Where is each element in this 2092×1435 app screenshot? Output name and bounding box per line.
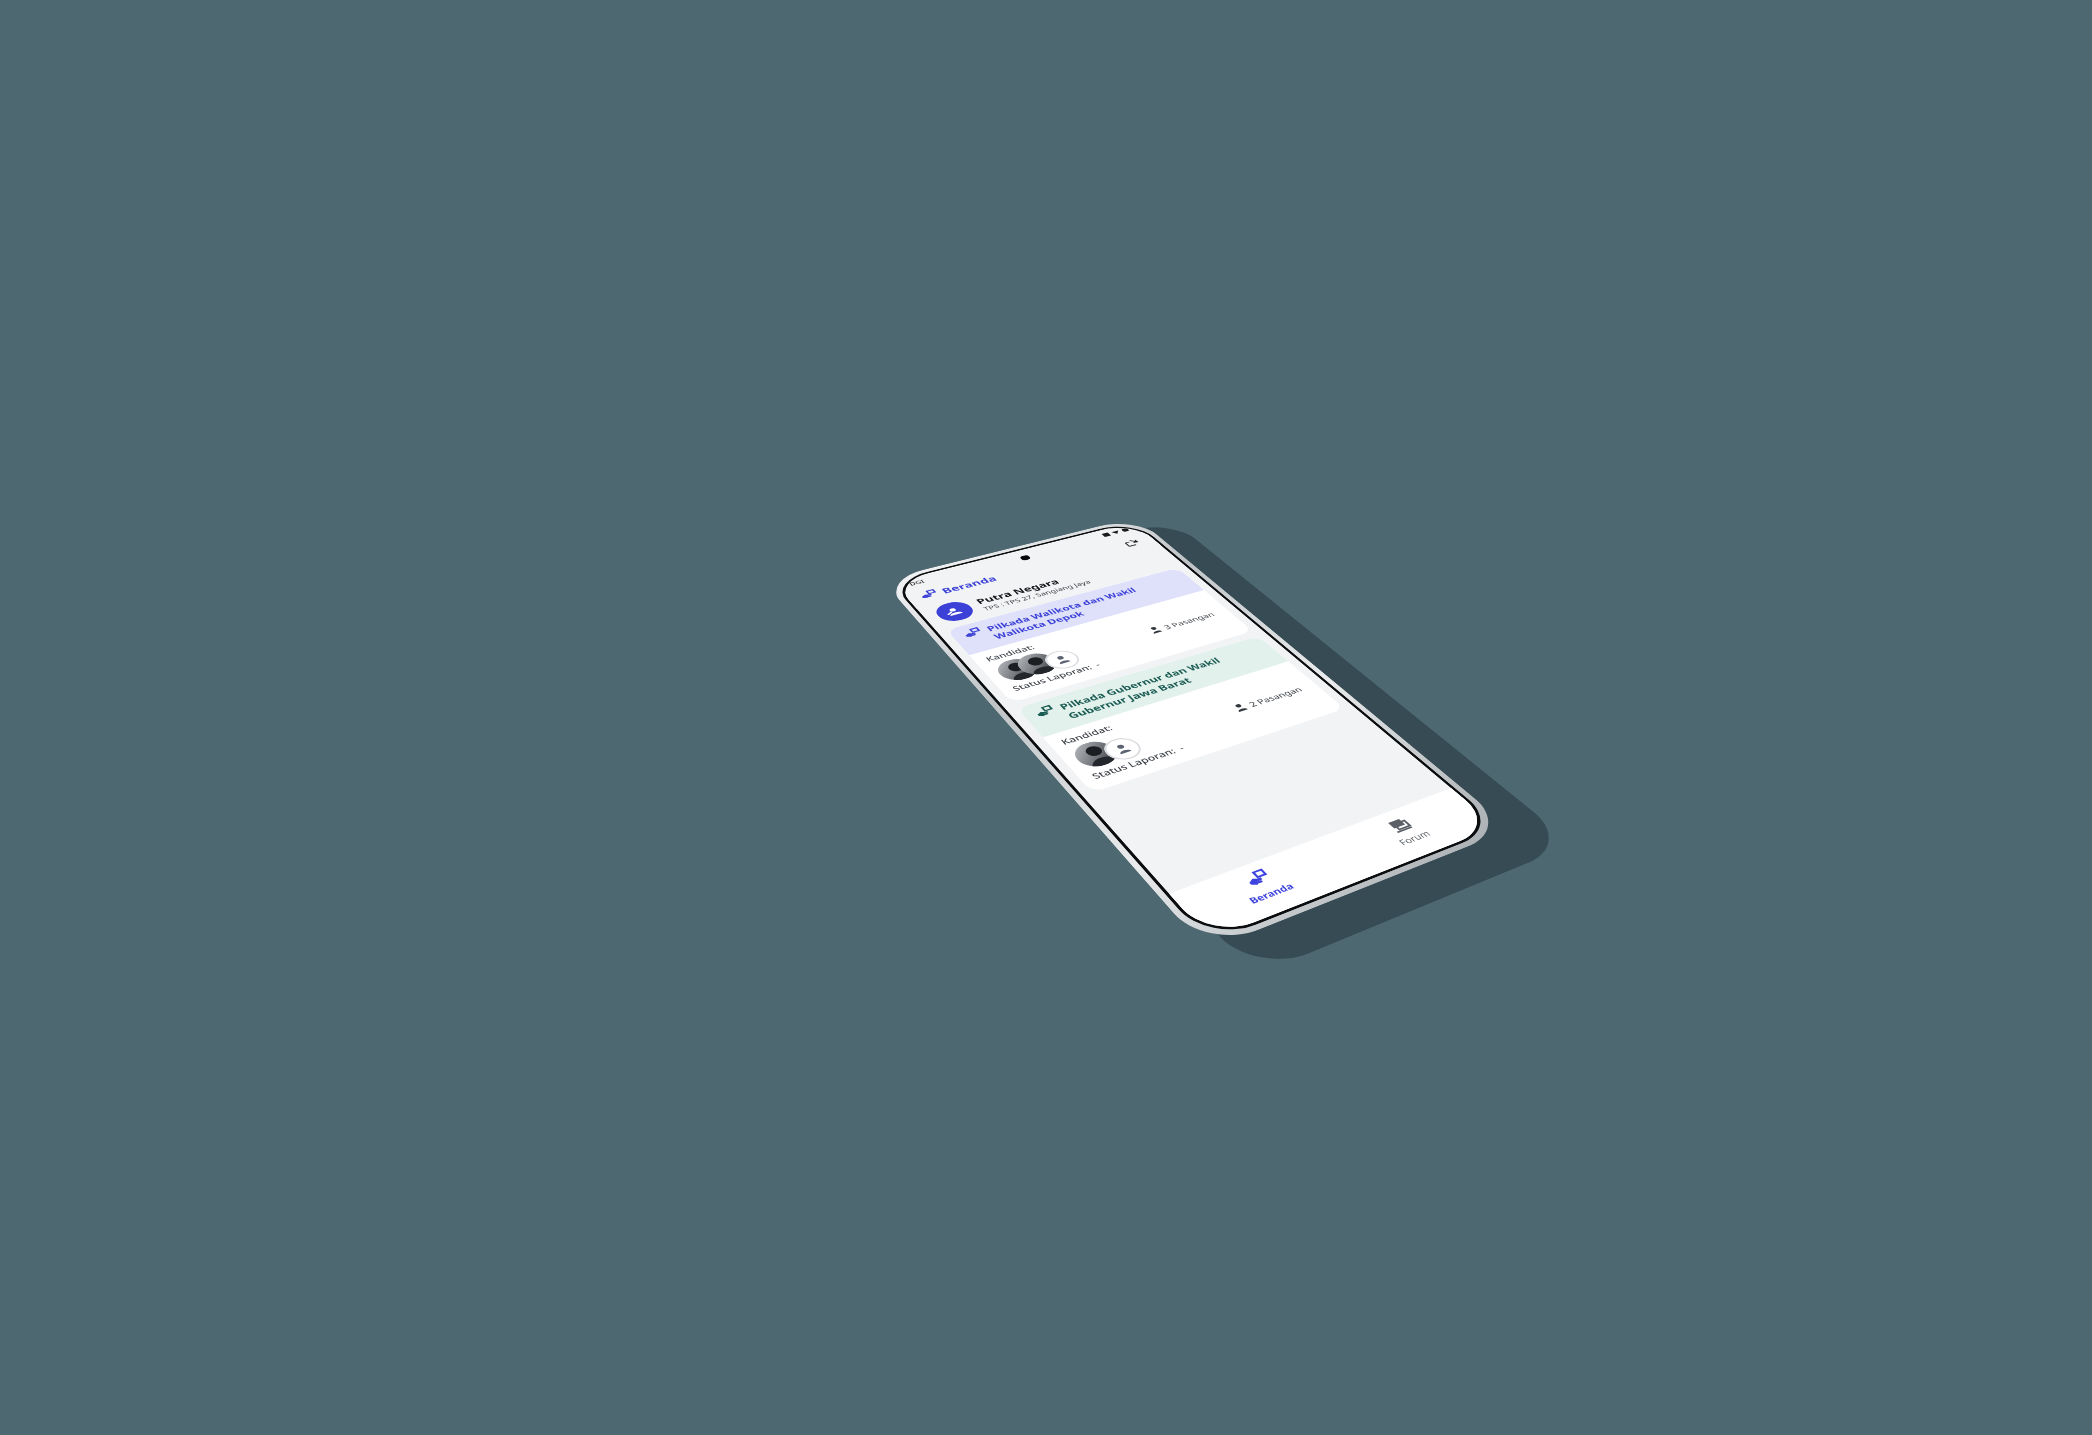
staticText: Putra Negara (973, 576, 1062, 606)
button[interactable]: Putra Negara (917, 545, 1182, 629)
staticText: 3 Pasangan (1161, 610, 1217, 631)
staticText: Kandidat: (983, 643, 1037, 664)
staticText: Forum (1395, 828, 1433, 848)
button[interactable]: Pilkada Walikota dan Wakil Walikota Depo… (946, 568, 1253, 703)
button[interactable]: Beranda (1174, 844, 1351, 929)
staticText: DGI (907, 578, 926, 587)
staticText: Pilkada Gubernur dan Wakil Gubernur Jawa… (1056, 643, 1273, 721)
button[interactable]: Forum (1322, 793, 1487, 871)
staticText: Status Laporan: - (1089, 743, 1188, 782)
staticText: Beranda (1246, 880, 1297, 906)
staticText: Beranda (939, 574, 1000, 595)
staticText: Kandidat: (1058, 723, 1116, 747)
staticText: Status Laporan: - (1010, 660, 1103, 693)
staticText: Pilkada Walikota dan Wakil Walikota Depo… (984, 574, 1190, 641)
staticText: 2 Pasangan (1246, 685, 1305, 709)
button[interactable]: Screenshot (1113, 534, 1149, 552)
button[interactable]: Pilkada Gubernur dan Wakil Gubernur Jawa… (1016, 636, 1345, 793)
staticText: TPS : TPS 27, Sangiang Jaya (981, 578, 1093, 612)
